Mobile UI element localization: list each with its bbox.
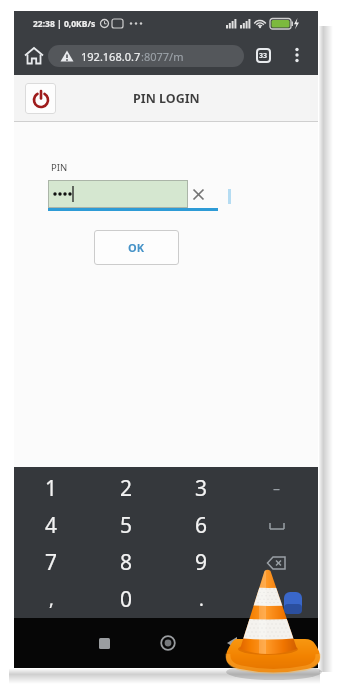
button[interactable] (239, 581, 314, 618)
button[interactable]: . (164, 581, 239, 618)
staticText: PIN (51, 161, 68, 174)
button[interactable]: – (239, 470, 314, 507)
staticText: 192.168.0.7 (81, 49, 141, 64)
staticText: PIN LOGIN (133, 90, 200, 107)
button[interactable] (207, 618, 257, 668)
button[interactable]: , (14, 581, 89, 618)
button[interactable]: 3 (164, 470, 239, 507)
staticText: 5 (120, 511, 133, 540)
button[interactable] (22, 44, 46, 68)
staticText: 22:38 | 0,0KB/s (33, 18, 96, 30)
button[interactable] (48, 180, 218, 211)
button[interactable]: 6 (164, 507, 239, 544)
button[interactable] (286, 44, 308, 66)
button[interactable]: 4 (14, 507, 89, 544)
button[interactable] (185, 180, 211, 208)
button[interactable]: 192.168.0.7 (48, 45, 244, 67)
staticText: , (49, 587, 54, 612)
button[interactable] (79, 618, 129, 668)
button[interactable]: 7 (14, 544, 89, 581)
button[interactable] (239, 507, 314, 544)
staticText: 8 (120, 548, 133, 577)
staticText: – (273, 479, 280, 498)
staticText: 6 (195, 511, 208, 540)
staticText: 4 (45, 511, 58, 540)
staticText: 1 (45, 474, 58, 503)
button[interactable]: 2 (89, 470, 164, 507)
button[interactable]: 33 (252, 44, 274, 66)
staticText: 0 (120, 585, 133, 614)
staticText: . (199, 587, 204, 612)
staticText: 9 (195, 548, 208, 577)
button[interactable] (143, 618, 193, 668)
staticText: OK (128, 240, 145, 255)
button[interactable]: 5 (89, 507, 164, 544)
button[interactable] (239, 544, 314, 581)
staticText: :8077/m (141, 49, 184, 64)
button[interactable] (25, 83, 56, 114)
staticText: 33 (259, 51, 268, 61)
button[interactable]: 8 (89, 544, 164, 581)
button[interactable]: 0 (89, 581, 164, 618)
button[interactable]: OK (94, 230, 179, 265)
staticText: 2 (120, 474, 133, 503)
staticText: 3 (195, 474, 208, 503)
staticText: 7 (45, 548, 58, 577)
button[interactable]: 1 (14, 470, 89, 507)
button[interactable]: 9 (164, 544, 239, 581)
